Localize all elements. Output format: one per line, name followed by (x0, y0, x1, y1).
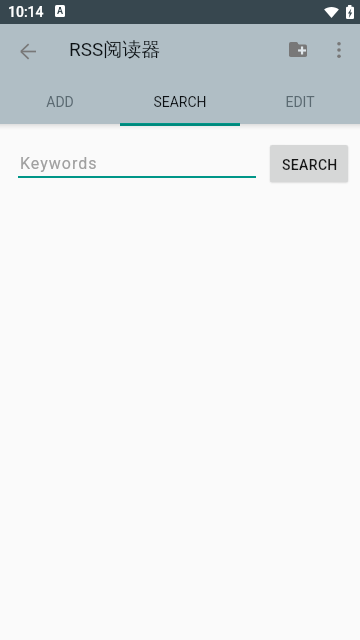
staticText: SEARCH (282, 157, 338, 173)
button[interactable]: Back (4, 27, 52, 75)
staticText: Keywords (20, 154, 98, 173)
button[interactable]: More options (317, 28, 360, 72)
staticText: A (57, 6, 64, 17)
staticText: EDIT (285, 94, 315, 110)
button[interactable]: ADD (0, 78, 120, 126)
button[interactable]: EDIT (240, 78, 360, 126)
button[interactable]: SEARCH (270, 145, 348, 182)
button[interactable]: Create new folder (274, 25, 322, 73)
staticText: RSS阅读器 (69, 38, 161, 62)
button[interactable]: Keywords input (18, 140, 256, 188)
button[interactable]: SEARCH (120, 78, 240, 126)
staticText: 10:14 (8, 4, 44, 20)
staticText: ADD (46, 94, 74, 110)
staticText: SEARCH (153, 94, 207, 110)
